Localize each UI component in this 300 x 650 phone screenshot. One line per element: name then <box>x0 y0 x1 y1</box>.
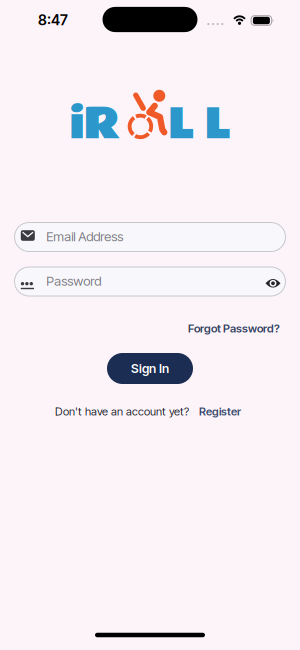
staticText: R <box>83 91 120 158</box>
staticText: L <box>168 91 194 158</box>
button[interactable]: Sign In <box>107 353 193 384</box>
staticText: Sign In <box>131 361 169 376</box>
staticText: 8:47 <box>38 11 68 29</box>
staticText: Email Address <box>46 229 123 244</box>
button[interactable]: Email Address <box>14 222 286 252</box>
button[interactable]: Password <box>14 266 286 296</box>
staticText: Forgot Password? <box>188 322 280 335</box>
button[interactable]: Forgot Password? <box>120 322 280 335</box>
staticText: L <box>204 91 230 158</box>
staticText: i <box>69 91 85 158</box>
staticText: Password <box>46 273 101 289</box>
button[interactable] <box>265 278 280 288</box>
button[interactable]: Register <box>199 405 241 418</box>
staticText: Don't have an account yet? <box>55 405 189 418</box>
staticText: Register <box>199 405 241 418</box>
